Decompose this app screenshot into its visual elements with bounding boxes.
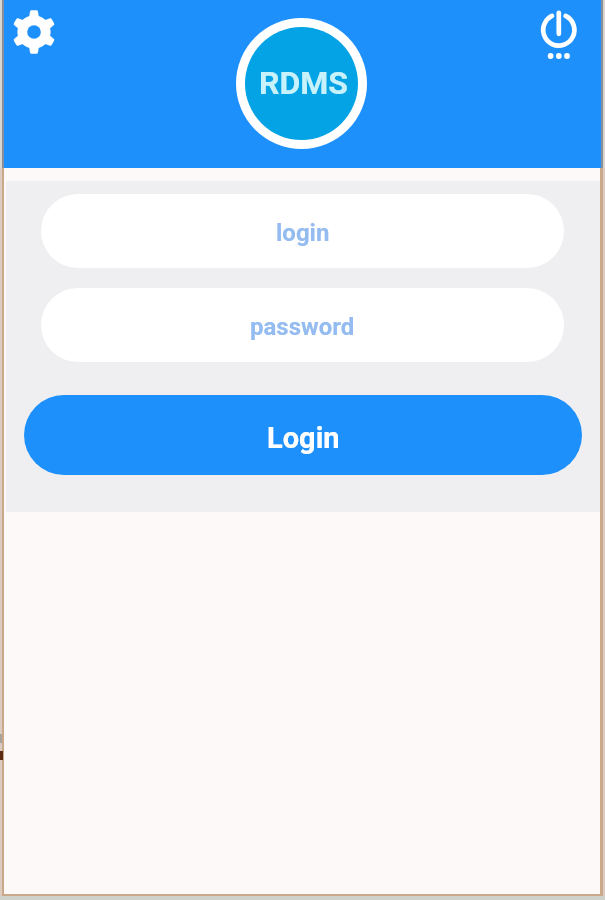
button[interactable]: Power xyxy=(534,2,584,66)
button[interactable]: password xyxy=(41,288,564,362)
staticText: Login xyxy=(267,421,340,455)
button[interactable]: Login xyxy=(24,395,582,475)
staticText: RDMS xyxy=(259,64,349,102)
button[interactable]: Settings xyxy=(10,8,58,56)
staticText: login xyxy=(276,219,330,247)
button[interactable]: login xyxy=(41,194,564,268)
staticText: password xyxy=(250,313,355,341)
